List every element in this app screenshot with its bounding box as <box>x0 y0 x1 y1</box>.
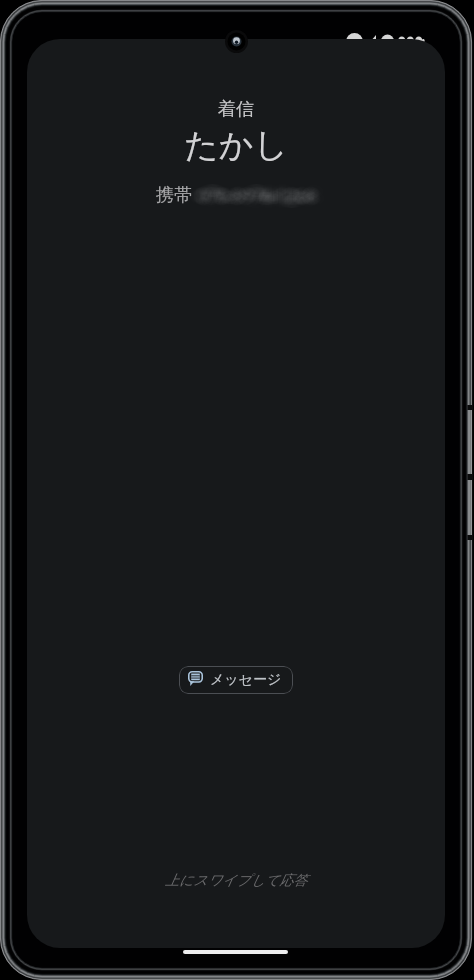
staticText: 070-8974-1268 <box>191 179 309 202</box>
staticText: 070-8974-1268 <box>199 187 317 210</box>
staticText: 070-8974-1268 <box>189 183 307 206</box>
staticText: 070-8974-1268 <box>190 184 308 207</box>
staticText: 070-8974-1268 <box>188 184 306 207</box>
staticText: 070-8974-1268 <box>203 184 321 207</box>
staticText: 上にスワイプして応答 <box>165 872 308 890</box>
staticText: 070-8974-1268 <box>187 184 305 207</box>
staticText: 070-8974-1268 <box>199 190 317 213</box>
staticText: 070-8974-1268 <box>201 190 319 213</box>
staticText: 070-8974-1268 <box>204 182 322 205</box>
staticText: 070-8974-1268 <box>200 183 318 206</box>
staticText: 070-8974-1268 <box>189 188 307 211</box>
staticText: 070-8974-1268 <box>204 186 322 209</box>
staticText: 070-8974-1268 <box>193 188 311 211</box>
staticText: 070-8974-1268 <box>203 182 321 205</box>
staticText: 070-8974-1268 <box>193 180 311 203</box>
staticText: 070-8974-1268 <box>188 186 306 209</box>
staticText: 070-8974-1268 <box>198 190 316 213</box>
staticText: 070-8974-1268 <box>205 180 323 203</box>
staticText: 070-8974-1268 <box>204 187 322 210</box>
staticText: 070-8974-1268 <box>196 180 314 203</box>
staticText: 070-8974-1268 <box>195 184 313 207</box>
staticText: 070-8974-1268 <box>191 181 309 204</box>
staticText: 070-8974-1268 <box>196 181 314 204</box>
staticText: 070-8974-1268 <box>194 178 312 201</box>
staticText: 070-8974-1268 <box>195 183 313 206</box>
staticText: 070-8974-1268 <box>209 182 327 205</box>
staticText: 070-8974-1268 <box>203 188 321 211</box>
staticText: 070-8974-1268 <box>200 186 318 209</box>
staticText: 070-8974-1268 <box>202 187 320 210</box>
staticText: 070-8974-1268 <box>209 184 327 207</box>
staticText: 070-8974-1268 <box>187 185 305 208</box>
staticText: 070-8974-1268 <box>189 186 307 209</box>
staticText: 070-8974-1268 <box>191 190 309 213</box>
staticText: 070-8974-1268 <box>195 180 313 203</box>
staticText: 070-8974-1268 <box>194 180 312 203</box>
staticText: 070-8974-1268 <box>196 189 314 212</box>
staticText: 070-8974-1268 <box>201 185 319 208</box>
staticText: 070-8974-1268 <box>207 183 325 206</box>
staticText: 070-8974-1268 <box>199 178 317 201</box>
staticText: 070-8974-1268 <box>198 189 316 212</box>
staticText: 070-8974-1268 <box>198 179 316 202</box>
staticText: 070-8974-1268 <box>202 180 320 203</box>
staticText: 070-8974-1268 <box>200 178 318 201</box>
staticText: 070-8974-1268 <box>193 189 311 212</box>
staticText: 070-8974-1268 <box>189 184 307 207</box>
button[interactable]: メッセージ <box>179 666 293 694</box>
staticText: 070-8974-1268 <box>208 182 326 205</box>
staticText: 070-8974-1268 <box>190 187 308 210</box>
staticText: 着信 <box>218 98 254 121</box>
staticText: 070-8974-1268 <box>187 182 305 205</box>
staticText: 070-8974-1268 <box>195 181 313 204</box>
staticText: 070-8974-1268 <box>195 179 313 202</box>
staticText: 070-8974-1268 <box>187 183 305 206</box>
staticText: 070-8974-1268 <box>190 179 308 202</box>
staticText: 070-8974-1268 <box>193 186 311 209</box>
staticText: 070-8974-1268 <box>190 185 308 208</box>
staticText: 070-8974-1268 <box>192 184 310 207</box>
staticText: 070-8974-1268 <box>188 181 306 204</box>
staticText: 070-8974-1268 <box>208 181 326 204</box>
staticText: 070-8974-1268 <box>207 184 325 207</box>
staticText: 070-8974-1268 <box>192 186 310 209</box>
staticText: 070-8974-1268 <box>196 179 314 202</box>
staticText: 070-8974-1268 <box>198 181 316 204</box>
staticText: 070-8974-1268 <box>193 181 311 204</box>
staticText: 070-8974-1268 <box>205 182 323 205</box>
staticText: 070-8974-1268 <box>193 178 311 201</box>
staticText: 070-8974-1268 <box>209 187 327 210</box>
staticText: 070-8974-1268 <box>195 189 313 212</box>
staticText: 070-8974-1268 <box>198 180 316 203</box>
staticText: 070-8974-1268 <box>204 185 322 208</box>
staticText: 070-8974-1268 <box>188 188 306 211</box>
staticText: 070-8974-1268 <box>196 183 314 206</box>
staticText: たかし <box>184 124 289 167</box>
staticText: 070-8974-1268 <box>197 182 315 205</box>
staticText: 070-8974-1268 <box>200 189 318 212</box>
staticText: 070-8974-1268 <box>193 179 311 202</box>
staticText: 070-8974-1268 <box>196 186 314 209</box>
staticText: 070-8974-1268 <box>206 182 324 205</box>
staticText: 070-8974-1268 <box>204 184 322 207</box>
staticText: 070-8974-1268 <box>199 184 317 207</box>
staticText: 070-8974-1268 <box>207 185 325 208</box>
staticText: 070-8974-1268 <box>208 187 326 210</box>
staticText: 070-8974-1268 <box>202 186 320 209</box>
staticText: 070-8974-1268 <box>194 189 312 212</box>
staticText: 070-8974-1268 <box>192 178 310 201</box>
staticText: 070-8974-1268 <box>189 180 307 203</box>
staticText: 070-8974-1268 <box>201 179 319 202</box>
staticText: 070-8974-1268 <box>206 186 324 209</box>
staticText: 070-8974-1268 <box>193 184 311 207</box>
staticText: 070-8974-1268 <box>203 189 321 212</box>
staticText: 070-8974-1268 <box>205 186 323 209</box>
staticText: 070-8974-1268 <box>203 190 321 213</box>
staticText: 070-8974-1268 <box>195 188 313 211</box>
staticText: 070-8974-1268 <box>197 187 315 210</box>
staticText: 070-8974-1268 <box>188 180 306 203</box>
staticText: 070-8974-1268 <box>209 183 327 206</box>
staticText: 070-8974-1268 <box>190 188 308 211</box>
staticText: 070-8974-1268 <box>201 184 319 207</box>
